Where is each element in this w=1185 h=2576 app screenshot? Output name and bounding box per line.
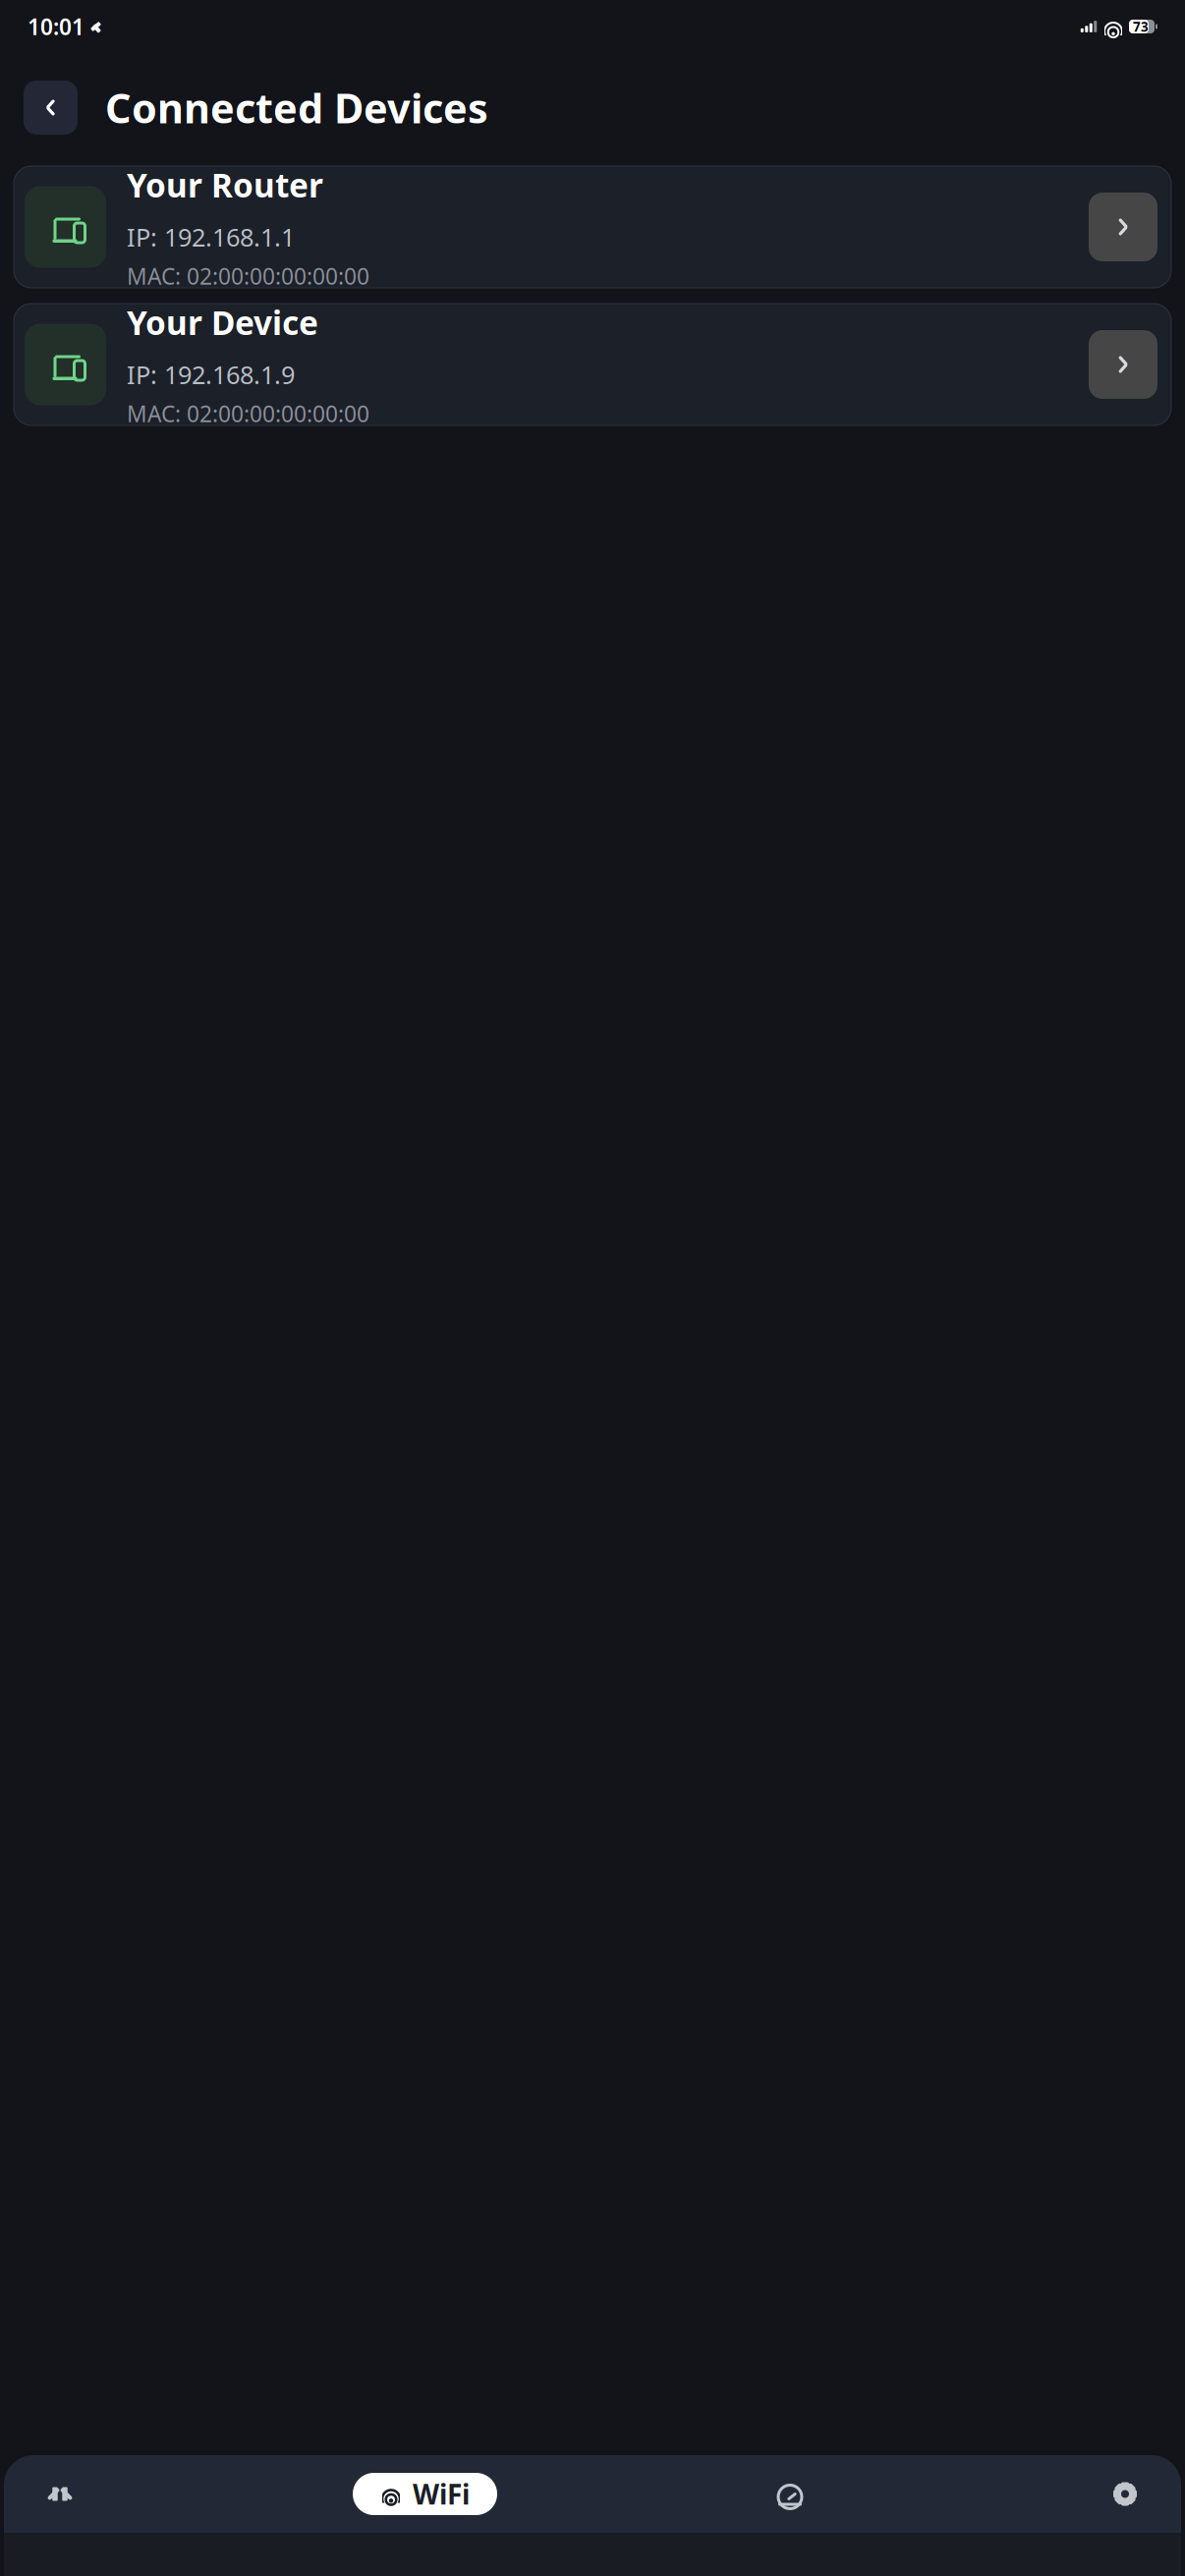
button[interactable]: Your Router bbox=[14, 166, 1171, 288]
button[interactable]: Speed Test bbox=[748, 2456, 832, 2532]
button[interactable]: Back bbox=[24, 81, 78, 135]
staticText: MAC: 02:00:00:00:00:00 bbox=[127, 261, 369, 291]
staticText: WiFi bbox=[413, 2476, 470, 2512]
button[interactable]: Settings bbox=[1083, 2456, 1167, 2532]
button[interactable]: Home bbox=[18, 2456, 102, 2532]
staticText: 10:01 bbox=[28, 12, 85, 41]
staticText: MAC: 02:00:00:00:00:00 bbox=[127, 399, 369, 428]
button[interactable]: WiFi bbox=[353, 2473, 497, 2515]
staticText: IP: 192.168.1.1 bbox=[127, 220, 295, 253]
button[interactable]: Your Device bbox=[14, 304, 1171, 425]
staticText: 73 bbox=[1133, 18, 1149, 35]
staticText: Your Device bbox=[127, 301, 318, 344]
staticText: IP: 192.168.1.9 bbox=[127, 358, 295, 391]
staticText: Your Router bbox=[127, 163, 323, 207]
staticText: Connected Devices bbox=[105, 81, 488, 135]
